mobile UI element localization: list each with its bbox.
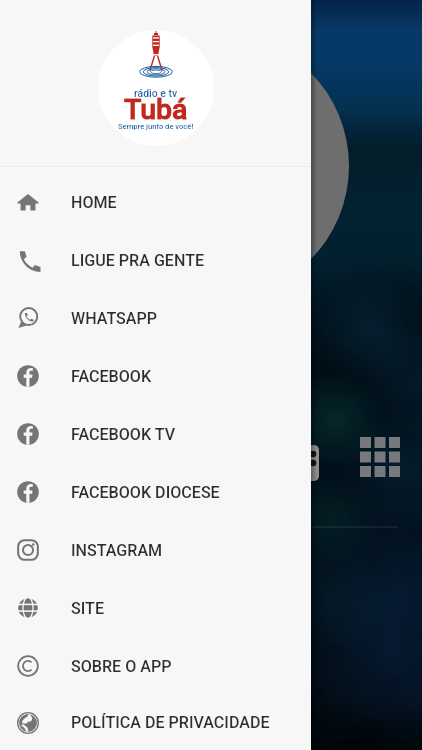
staticText: FACEBOOK xyxy=(71,367,152,386)
button[interactable]: FACEBOOK DIOCESE xyxy=(0,463,311,521)
button[interactable]: SOBRE O APP xyxy=(0,637,311,695)
staticText: FACEBOOK DIOCESE xyxy=(71,483,220,502)
button[interactable]: POLÍTICA DE PRIVACIDADE xyxy=(0,695,311,750)
button[interactable]: LIGUE PRA GENTE xyxy=(0,231,311,289)
staticText: SITE xyxy=(71,599,104,618)
button[interactable]: FACEBOOK xyxy=(0,347,311,405)
staticText: WHATSAPP xyxy=(71,309,158,328)
staticText: Sempre junto de você! xyxy=(118,122,194,131)
button[interactable]: WHATSAPP xyxy=(0,289,311,347)
staticText: FACEBOOK TV xyxy=(71,425,176,444)
button[interactable]: INSTAGRAM xyxy=(0,521,311,579)
button[interactable]: SITE xyxy=(0,579,311,637)
button[interactable]: FACEBOOK TV xyxy=(0,405,311,463)
button[interactable]: Apps xyxy=(360,437,400,477)
staticText: POLÍTICA DE PRIVACIDADE xyxy=(71,713,270,732)
staticText: INSTAGRAM xyxy=(71,541,163,560)
staticText: Tubá xyxy=(124,93,188,126)
staticText: rádio e tv xyxy=(134,87,178,99)
staticText: LIGUE PRA GENTE xyxy=(71,251,205,270)
staticText: HOME xyxy=(71,193,117,212)
button[interactable]: HOME xyxy=(0,173,311,231)
staticText: SOBRE O APP xyxy=(71,657,172,676)
